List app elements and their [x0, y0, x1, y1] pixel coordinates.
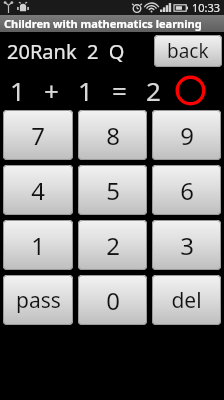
staticText: 1	[31, 229, 45, 262]
staticText: 0	[106, 284, 120, 317]
staticText: 1	[10, 73, 25, 108]
staticText: 8	[106, 119, 120, 152]
staticText: 9	[180, 119, 194, 152]
button[interactable]: 5	[78, 165, 147, 215]
staticText: del	[171, 286, 202, 315]
staticText: 3	[180, 229, 194, 262]
staticText: 7	[31, 119, 45, 152]
button[interactable]: 7	[3, 110, 73, 160]
button[interactable]: pass	[3, 275, 73, 325]
button[interactable]: 1	[3, 220, 73, 270]
staticText: pass	[16, 286, 61, 315]
staticText: 5	[106, 174, 120, 207]
staticText: 1	[78, 73, 93, 108]
staticText: +	[44, 73, 59, 108]
staticText: 20Rank 2 Q	[7, 38, 125, 65]
staticText: 2	[146, 73, 161, 108]
staticText: 2	[106, 229, 120, 262]
button[interactable]: 3	[152, 220, 221, 270]
button[interactable]: 0	[78, 275, 147, 325]
staticText: 4	[31, 174, 45, 207]
staticText: back	[167, 38, 209, 64]
staticText: =	[112, 73, 127, 108]
button[interactable]: 8	[78, 110, 147, 160]
button[interactable]: 6	[152, 165, 221, 215]
button[interactable]: del	[152, 275, 221, 325]
staticText: 6	[180, 174, 194, 207]
button[interactable]: back	[154, 35, 222, 67]
button[interactable]: 4	[3, 165, 73, 215]
button[interactable]: 2	[78, 220, 147, 270]
button[interactable]: 9	[152, 110, 221, 160]
staticText: Children with mathematics learning	[4, 16, 202, 31]
staticText: 10:33	[192, 0, 221, 15]
